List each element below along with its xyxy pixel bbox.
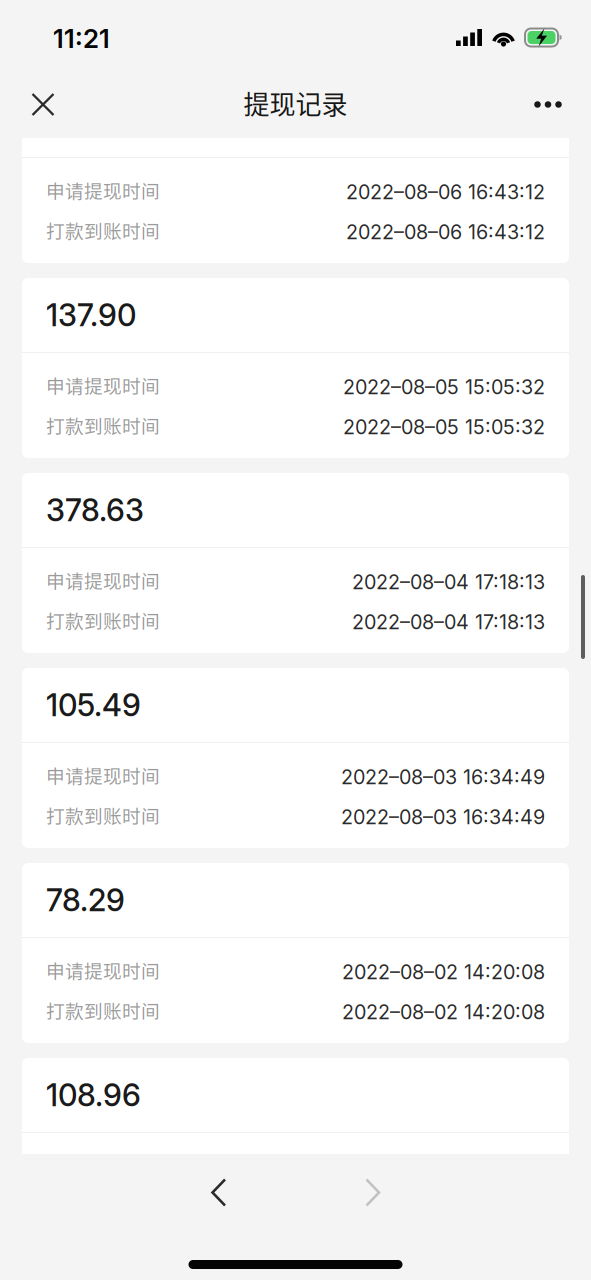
button[interactable]: Forward <box>350 1169 396 1215</box>
staticText: 2022–08–04 17:18:13 <box>352 570 545 594</box>
staticText: 打款到账时间 <box>46 801 160 828</box>
staticText: 108.96 <box>46 1076 141 1113</box>
staticText: 378.63 <box>46 491 144 528</box>
staticText: 2022–08–06 16:43:12 <box>346 220 545 244</box>
staticText: 2022–08–03 16:34:49 <box>341 805 545 829</box>
staticText: 2022–08–05 15:05:32 <box>343 375 545 399</box>
staticText: 打款到账时间 <box>46 606 160 633</box>
staticText: 申请提现时间 <box>46 761 160 788</box>
staticText: 78.29 <box>46 881 125 918</box>
staticText: 打款到账时间 <box>46 996 160 1023</box>
staticText: 2022–08–02 14:20:08 <box>342 960 545 984</box>
staticText: 2022–08–05 15:05:32 <box>343 415 545 439</box>
staticText: 申请提现时间 <box>46 371 160 398</box>
button[interactable]: Close <box>17 78 69 128</box>
staticText: 2022–08–02 14:20:08 <box>342 1000 545 1024</box>
staticText: 2022–08–04 17:18:13 <box>352 610 545 634</box>
staticText: 申请提现时间 <box>46 176 160 203</box>
staticText: 打款到账时间 <box>46 216 160 243</box>
staticText: 11:21 <box>53 23 110 54</box>
staticText: 申请提现时间 <box>46 566 160 593</box>
staticText: 105.49 <box>46 686 141 723</box>
staticText: 137.90 <box>46 296 136 333</box>
staticText: 打款到账时间 <box>46 411 160 438</box>
staticText: 提现记录 <box>243 84 347 122</box>
staticText: 申请提现时间 <box>46 956 160 983</box>
button[interactable]: More <box>522 78 574 128</box>
staticText: 2022–08–03 16:34:49 <box>341 765 545 789</box>
staticText: 2022–08–06 16:43:12 <box>346 180 545 204</box>
button[interactable]: Back <box>196 1169 242 1215</box>
